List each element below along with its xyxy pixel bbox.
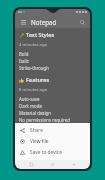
staticText: Strike-through — [19, 65, 49, 71]
button[interactable]: Back — [69, 160, 78, 169]
staticText: Save to device — [30, 149, 62, 156]
button[interactable]: Save to device — [15, 147, 90, 158]
button[interactable]: Home — [48, 160, 57, 169]
button[interactable]: Recents — [27, 160, 36, 169]
button[interactable]: Share — [15, 125, 90, 136]
button[interactable]: Open navigation menu — [19, 18, 27, 26]
staticText: Italic — [19, 58, 29, 64]
staticText: No permissions required — [19, 117, 70, 123]
staticText: 4 minutes ago — [19, 42, 48, 48]
button[interactable]: Text Styles — [19, 31, 86, 72]
button[interactable]: Features — [19, 76, 86, 123]
staticText: Bold — [19, 51, 29, 57]
staticText: Features — [26, 76, 50, 84]
staticText: Material design — [19, 110, 52, 116]
staticText: Dark mode — [19, 103, 42, 109]
staticText: Auto-save — [19, 96, 40, 102]
staticText: 8 minutes ago — [19, 87, 48, 93]
staticText: Share — [30, 127, 43, 134]
staticText: Notepad — [31, 18, 78, 26]
staticText: Text Styles — [26, 31, 55, 39]
button[interactable]: Search — [78, 18, 86, 26]
staticText: View file — [30, 138, 49, 145]
button[interactable]: View file — [15, 136, 90, 147]
